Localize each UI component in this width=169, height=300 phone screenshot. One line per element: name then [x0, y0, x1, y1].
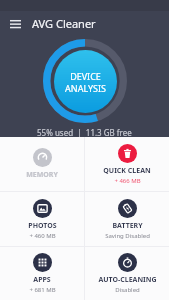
staticText: AUTO-CLEANING — [98, 275, 157, 285]
button[interactable]: Auto-cleaning — [85, 247, 169, 300]
staticText: + 460 MB — [29, 232, 56, 240]
staticText: Disabled — [115, 286, 140, 294]
staticText: DEVICE — [70, 70, 101, 82]
staticText: APPS — [33, 275, 51, 285]
staticText: PHOTOS — [28, 221, 57, 231]
staticText: + 681 MB — [29, 286, 56, 294]
button[interactable]: Quick clean — [85, 137, 169, 191]
button[interactable]: Battery — [85, 192, 169, 246]
staticText: + 466 MB — [114, 177, 141, 185]
button[interactable]: Photos — [0, 192, 84, 246]
staticText: MEMORY — [26, 170, 58, 180]
staticText: QUICK CLEAN — [103, 166, 151, 176]
staticText: AVG Cleaner — [32, 16, 96, 31]
staticText: BATTERY — [112, 221, 143, 231]
staticText: 55% used | 11.3 GB free — [37, 127, 132, 137]
staticText: Saving Disabled — [105, 232, 150, 240]
button[interactable]: Open navigation menu — [6, 14, 25, 33]
staticText: ANALYSIS — [65, 82, 106, 94]
button[interactable]: Device analysis — [43, 39, 127, 123]
button[interactable]: Apps — [0, 247, 84, 300]
button[interactable]: Memory — [0, 137, 84, 191]
